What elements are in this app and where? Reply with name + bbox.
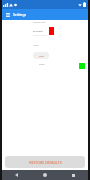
staticText: Custom color xyxy=(33,21,46,24)
staticText: Green xyxy=(39,63,45,66)
button[interactable]: Recent apps xyxy=(59,170,88,180)
staticText: add xyxy=(39,54,44,57)
button[interactable]: RESTORE DEFAULTS xyxy=(5,156,85,168)
staticText: RESTORE DEFAULTS xyxy=(29,160,62,165)
staticText: #FF0000 xyxy=(33,29,43,32)
staticText: Settings xyxy=(13,12,27,17)
button[interactable]: Open navigation menu xyxy=(2,9,14,20)
button[interactable]: Home xyxy=(30,170,59,180)
button[interactable]: Back xyxy=(2,170,30,180)
button[interactable]: add xyxy=(33,52,49,59)
staticText: Name xyxy=(33,44,39,47)
